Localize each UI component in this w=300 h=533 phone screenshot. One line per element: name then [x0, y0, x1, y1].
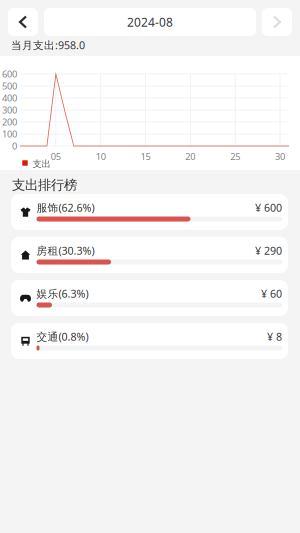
- staticText: 娱乐(6.3%): [36, 286, 88, 301]
- staticText: 100: [2, 128, 17, 140]
- staticText: 05: [51, 150, 61, 163]
- button[interactable]: 房租(30.3%): [11, 237, 288, 273]
- staticText: 200: [2, 116, 17, 128]
- staticText: 300: [2, 104, 17, 116]
- staticText: 支出: [32, 158, 50, 170]
- staticText: 25: [230, 150, 240, 163]
- button[interactable]: 服饰(62.6%): [11, 194, 288, 230]
- button[interactable]: 娱乐(6.3%): [11, 280, 288, 316]
- button[interactable]: 2024-08: [44, 8, 256, 36]
- staticText: 20: [185, 150, 195, 163]
- staticText: 0: [12, 140, 17, 152]
- staticText: ¥ 60: [261, 286, 282, 301]
- staticText: 2024-08: [127, 14, 173, 30]
- staticText: 500: [2, 80, 17, 92]
- staticText: 400: [2, 92, 17, 104]
- staticText: 30: [275, 150, 285, 163]
- staticText: ¥ 8: [267, 329, 282, 344]
- staticText: ¥ 290: [255, 243, 282, 258]
- staticText: 10: [96, 150, 106, 163]
- staticText: 房租(30.3%): [36, 243, 94, 258]
- button[interactable]: 交通(0.8%): [11, 323, 288, 359]
- staticText: 支出排行榜: [12, 177, 77, 193]
- staticText: 当月支出:958.0: [11, 38, 85, 52]
- staticText: ¥ 600: [255, 200, 282, 215]
- button[interactable]: Next month: [262, 8, 292, 36]
- staticText: 服饰(62.6%): [36, 200, 94, 215]
- staticText: 600: [2, 68, 17, 80]
- staticText: 15: [140, 150, 150, 163]
- button[interactable]: Previous month: [8, 8, 38, 36]
- staticText: 交通(0.8%): [36, 329, 88, 344]
